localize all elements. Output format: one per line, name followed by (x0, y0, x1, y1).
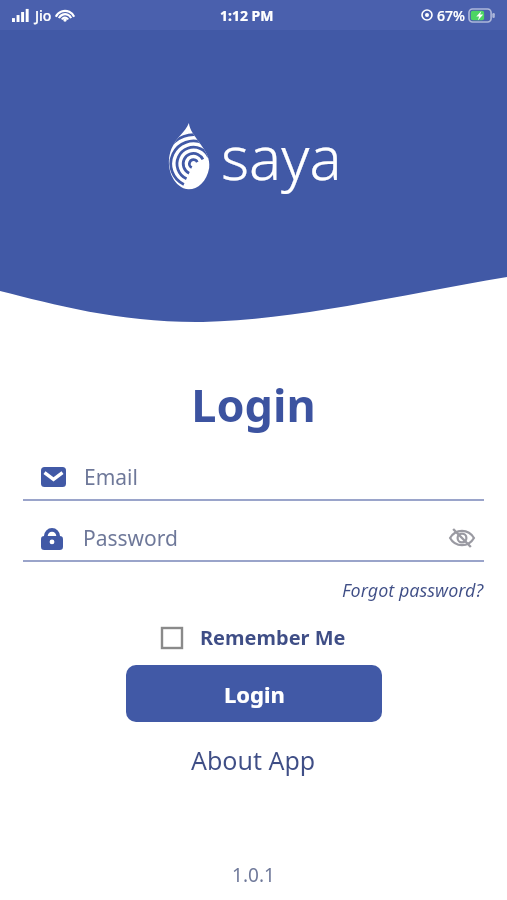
staticText: Forgot password? (342, 578, 484, 603)
staticText: Jio (35, 6, 52, 25)
staticText: Password (83, 524, 178, 553)
button[interactable]: Password (23, 516, 484, 562)
button[interactable]: Forgot password? (339, 575, 487, 606)
staticText: Login (224, 679, 285, 709)
button[interactable]: About App (185, 737, 322, 783)
staticText: 1.0.1 (0, 862, 507, 888)
button[interactable]: Email (23, 455, 484, 501)
button[interactable]: Show password (442, 518, 482, 558)
staticText: Login (0, 374, 507, 435)
staticText: saya (221, 116, 342, 198)
button[interactable]: Remember Me (158, 620, 350, 655)
staticText: 67% (437, 6, 465, 25)
staticText: About App (191, 743, 316, 777)
staticText: Remember Me (200, 624, 346, 651)
staticText: Email (84, 463, 138, 492)
staticText: 1:12 PM (220, 6, 274, 25)
button[interactable]: Login (126, 665, 382, 722)
